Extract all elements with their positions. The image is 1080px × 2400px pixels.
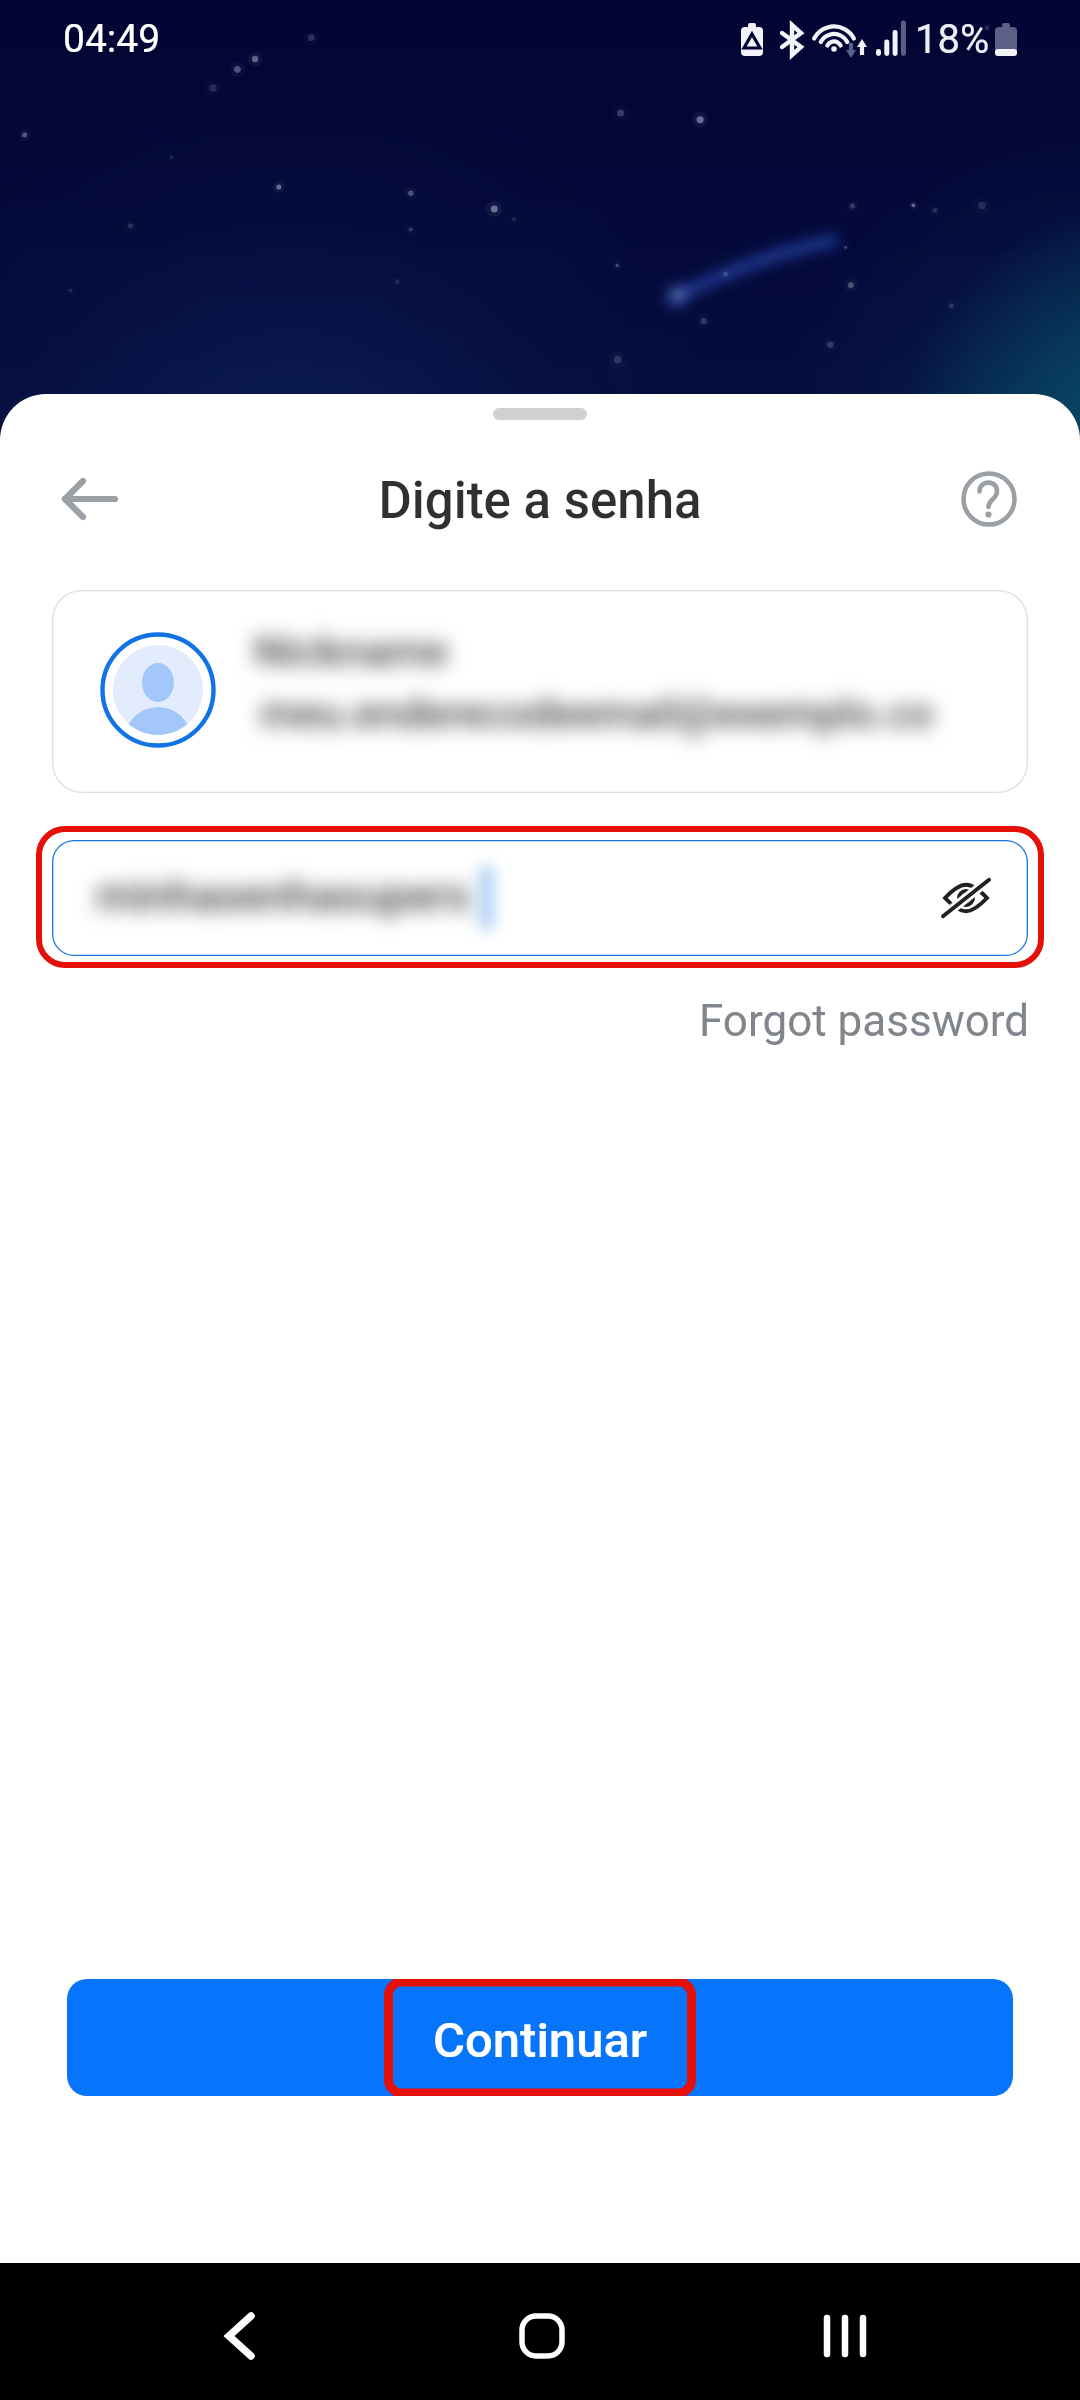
- button[interactable]: Forgot password: [699, 995, 1030, 1047]
- staticText: Continuar: [433, 2012, 648, 2069]
- button[interactable]: Home: [452, 2267, 632, 2400]
- staticText: minhasenhasupers: [96, 870, 471, 922]
- button[interactable]: Recent apps: [755, 2267, 935, 2400]
- staticText: 18%: [915, 16, 990, 63]
- button[interactable]: Show password: [923, 855, 1009, 941]
- button[interactable]: Nickname: [52, 590, 1028, 793]
- staticText: 04:49: [63, 16, 161, 62]
- staticText: meu.enderecodeemail@exemplo.co: [260, 689, 934, 738]
- button[interactable]: minhasenhasupers: [52, 840, 1028, 956]
- button[interactable]: Help: [937, 447, 1041, 551]
- staticText: Nickname: [254, 626, 448, 676]
- staticText: Forgot password: [699, 995, 1030, 1047]
- staticText: Digite a senha: [0, 471, 1080, 531]
- button[interactable]: Back: [38, 447, 142, 551]
- button[interactable]: Back: [150, 2267, 330, 2400]
- button[interactable]: Continuar: [67, 1979, 1013, 2096]
